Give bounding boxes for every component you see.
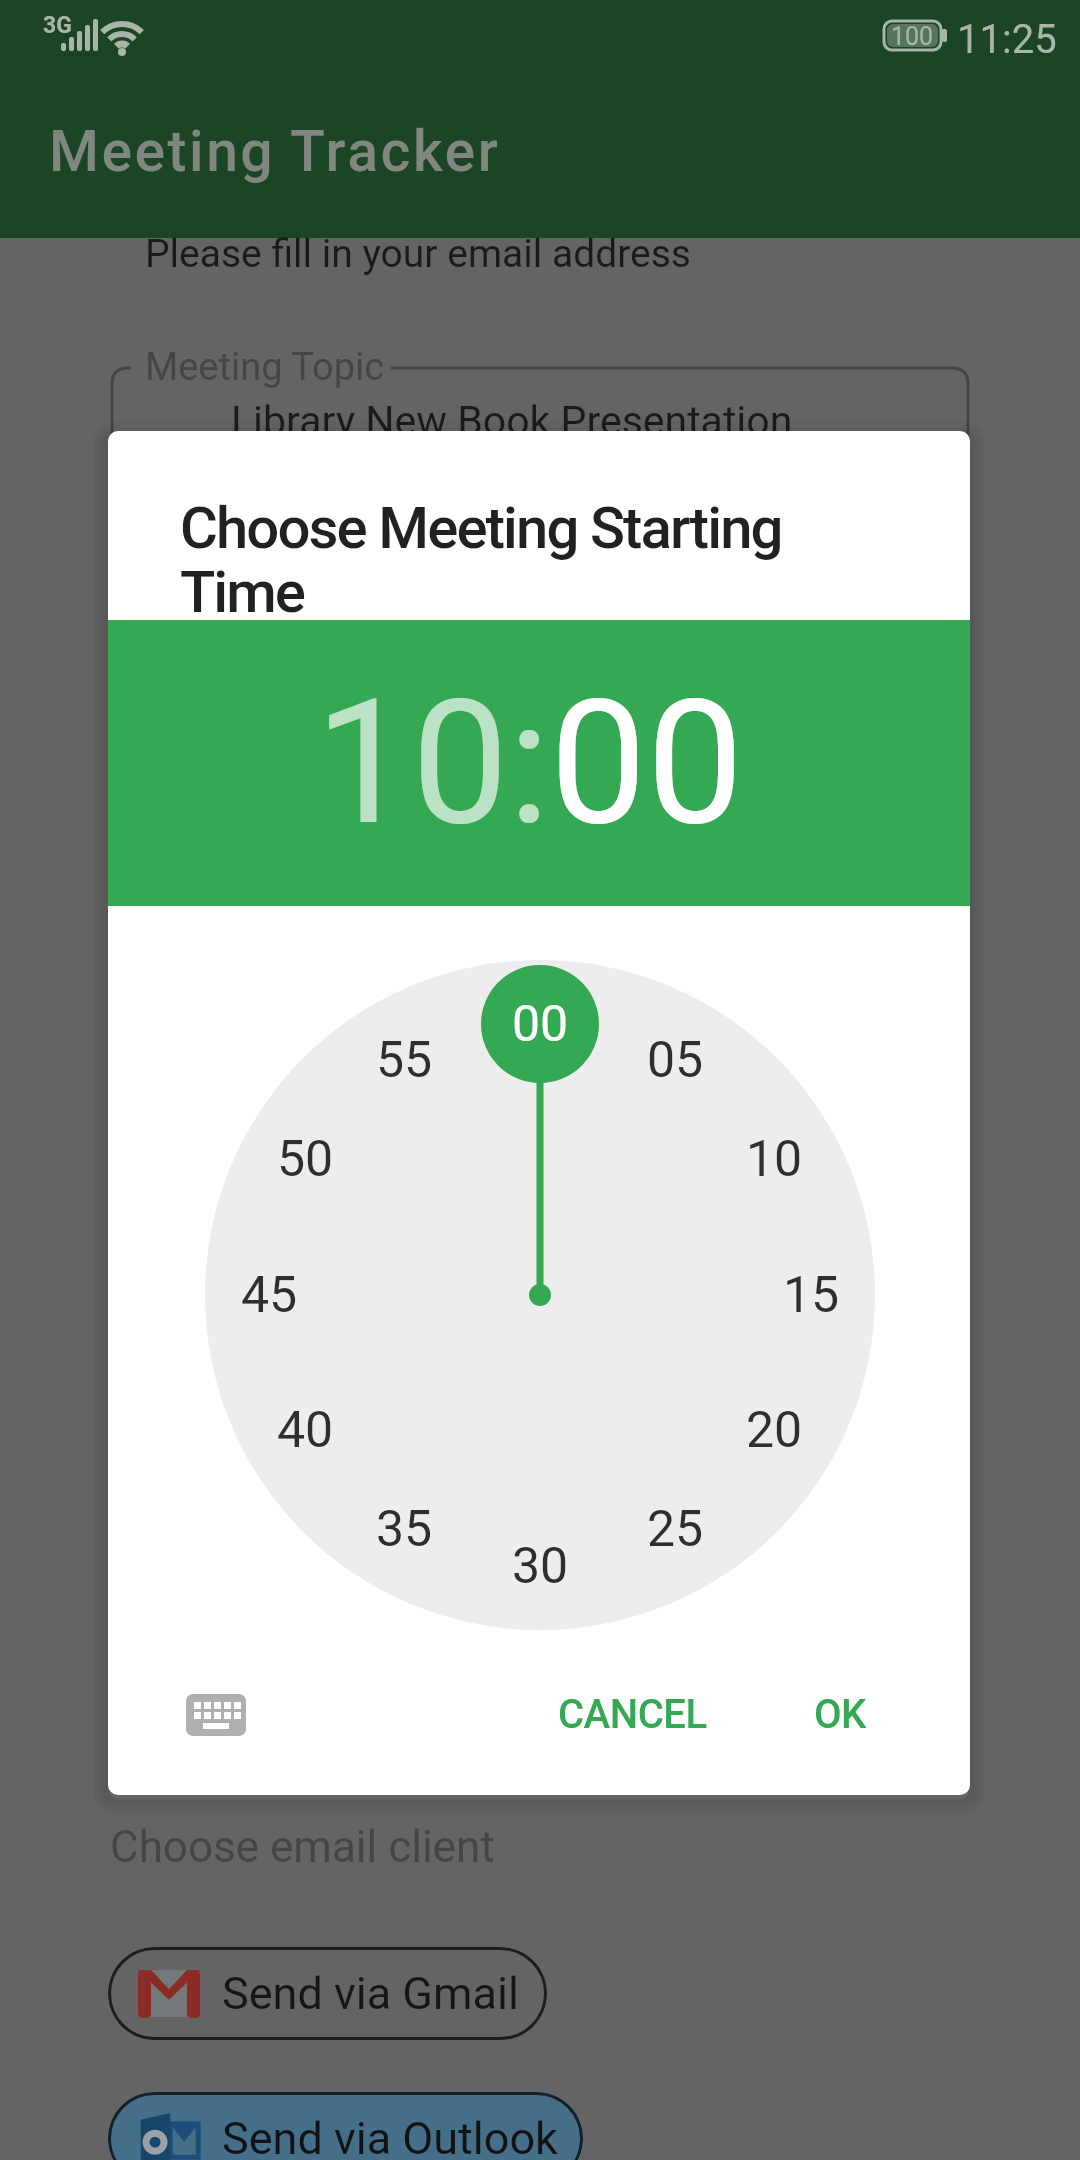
staticText: OK xyxy=(814,1691,866,1738)
staticText: 30 xyxy=(512,1537,569,1596)
staticText: Send via Gmail xyxy=(222,1967,519,2020)
button[interactable]: 00 xyxy=(480,964,600,1084)
staticText: 11:25 xyxy=(957,16,1057,63)
button[interactable]: Send via Gmail xyxy=(108,1947,547,2040)
staticText: 55 xyxy=(376,1031,433,1090)
staticText: 10 xyxy=(746,1130,803,1189)
staticText: 20 xyxy=(746,1401,803,1460)
staticText: 35 xyxy=(376,1500,433,1559)
staticText: Choose email client xyxy=(110,1821,495,1873)
staticText: 15 xyxy=(783,1266,840,1325)
staticText: 40 xyxy=(277,1401,334,1460)
staticText: 10:00 xyxy=(315,662,744,864)
staticText: Library New Book Presentation xyxy=(231,397,793,445)
staticText: 45 xyxy=(241,1266,298,1325)
staticText: Send via Outlook xyxy=(222,2112,558,2160)
staticText: Choose Meeting Starting Time xyxy=(180,494,782,626)
staticText: 00 xyxy=(512,995,569,1054)
button[interactable]: OK xyxy=(770,1664,910,1764)
button[interactable]: Send via Outlook xyxy=(108,2092,583,2160)
staticText: 50 xyxy=(277,1130,334,1189)
button[interactable]: CANCEL xyxy=(522,1664,742,1764)
button[interactable] xyxy=(186,1694,246,1736)
staticText: Meeting Topic xyxy=(145,345,385,390)
staticText: Please fill in your email address xyxy=(145,231,691,277)
staticText: Meeting Tracker xyxy=(49,118,501,185)
staticText: 3G xyxy=(43,12,72,39)
staticText: 25 xyxy=(647,1500,704,1559)
staticText: 100 xyxy=(891,22,934,51)
staticText: 05 xyxy=(647,1031,704,1090)
staticText: CANCEL xyxy=(558,1691,707,1738)
